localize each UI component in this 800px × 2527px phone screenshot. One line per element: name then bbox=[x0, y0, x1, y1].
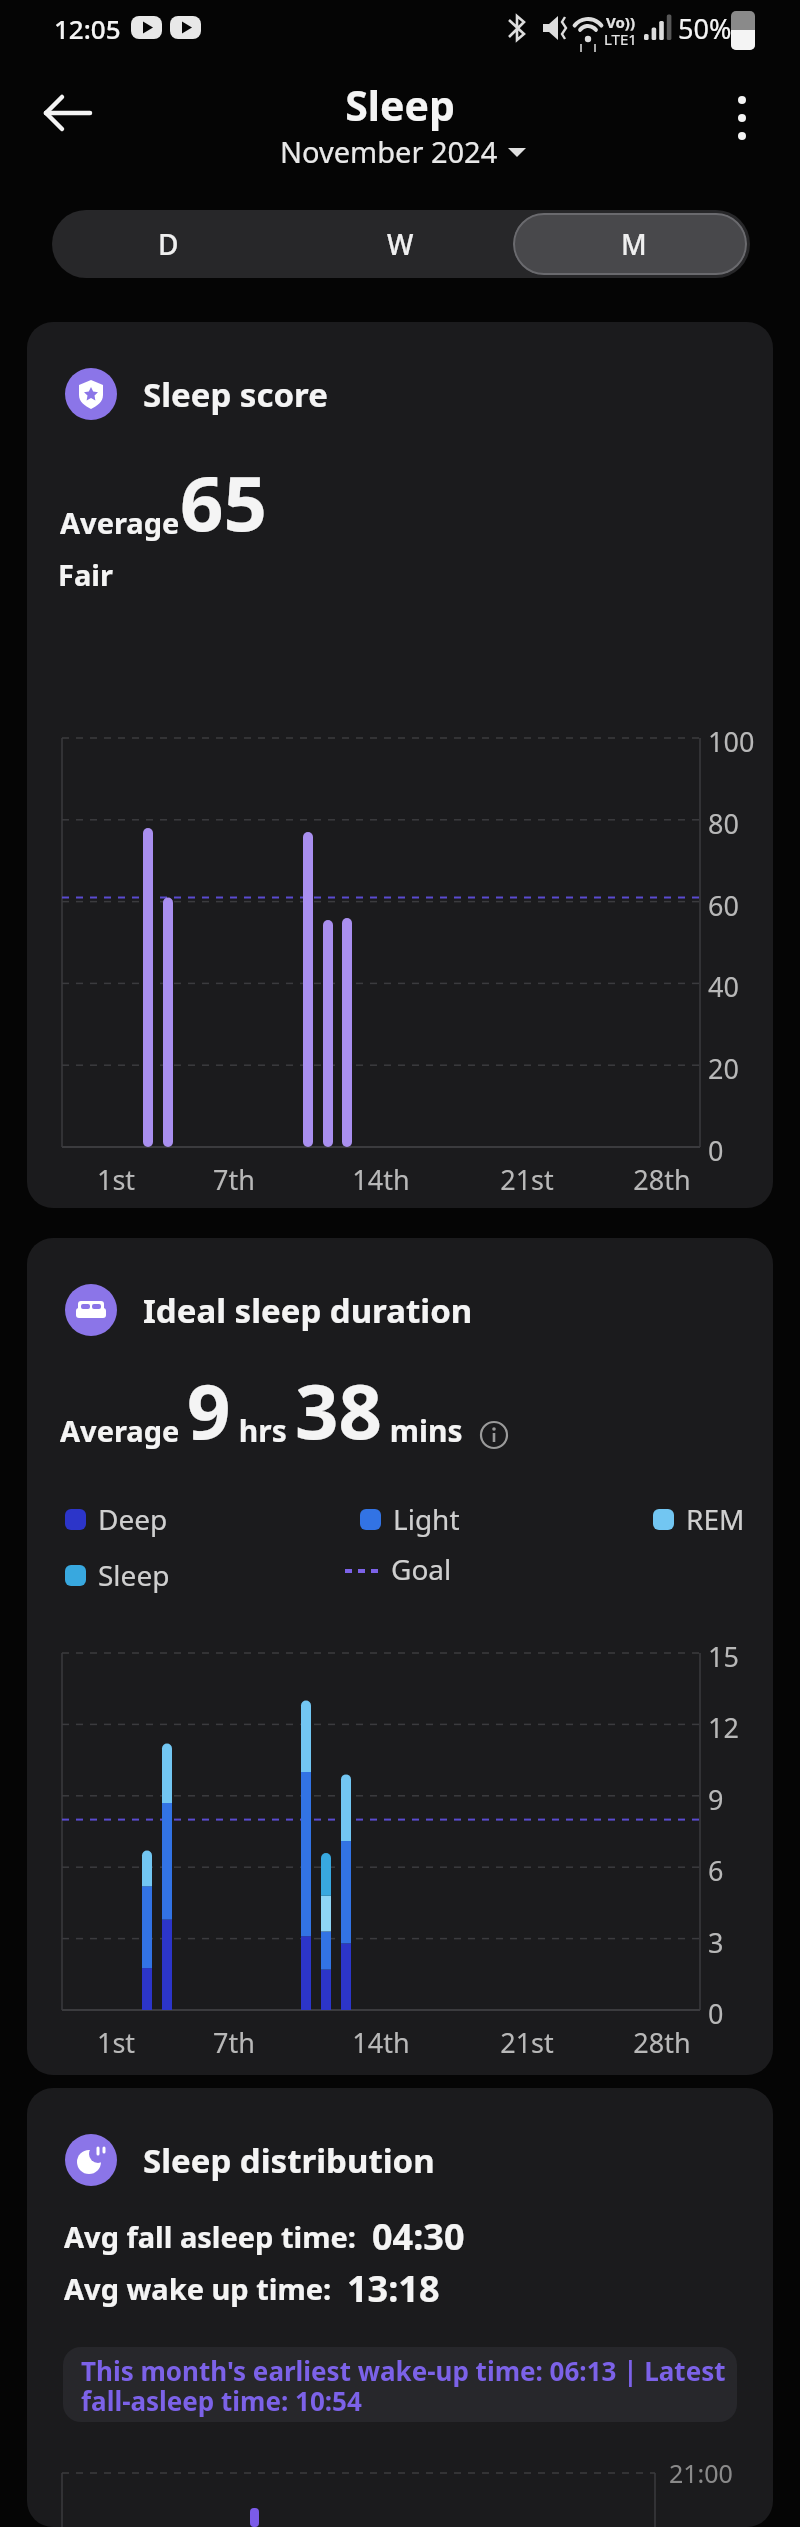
staticText: 1st bbox=[71, 2024, 161, 2061]
staticText: Avg fall asleep time: bbox=[64, 2217, 372, 2256]
button[interactable]: D bbox=[52, 210, 284, 278]
staticText: 12 bbox=[708, 1709, 768, 1746]
staticText: 80 bbox=[708, 805, 768, 842]
staticText: 15 bbox=[708, 1638, 768, 1675]
staticText: 14th bbox=[336, 1161, 426, 1198]
staticText: Average bbox=[60, 1411, 187, 1450]
staticText: Vo)) bbox=[606, 12, 635, 32]
staticText: 21st bbox=[482, 1161, 572, 1198]
staticText: 7th bbox=[189, 1161, 279, 1198]
staticText: 1st bbox=[71, 1161, 161, 1198]
staticText: 60 bbox=[708, 887, 768, 924]
button[interactable]: November 2024 bbox=[280, 132, 520, 171]
staticText: 12:05 bbox=[54, 11, 121, 46]
staticText: mins bbox=[382, 1410, 471, 1451]
staticText: 28th bbox=[617, 2024, 707, 2061]
staticText: 9 bbox=[708, 1781, 768, 1818]
staticText: 50% bbox=[678, 10, 732, 47]
staticText: REM bbox=[686, 1500, 745, 1538]
staticText: 65 bbox=[180, 450, 267, 554]
button[interactable] bbox=[712, 90, 768, 146]
staticText: Deep bbox=[98, 1500, 168, 1538]
staticText: Avg wake up time: bbox=[64, 2269, 347, 2308]
staticText: Average bbox=[60, 503, 180, 542]
staticText: 13:18 bbox=[347, 2264, 440, 2313]
staticText: LTE1 bbox=[604, 29, 637, 49]
staticText: Sleep distribution bbox=[143, 2138, 435, 2183]
staticText: 7th bbox=[189, 2024, 279, 2061]
staticText: 0 bbox=[708, 1995, 768, 2032]
staticText: 3 bbox=[708, 1924, 768, 1961]
staticText: 100 bbox=[708, 723, 768, 760]
staticText: Goal bbox=[391, 1550, 452, 1588]
staticText: W bbox=[387, 225, 414, 263]
staticText: Light bbox=[393, 1500, 460, 1538]
staticText: This month's earliest wake-up time: 06:1… bbox=[81, 2353, 726, 2419]
staticText: 38 bbox=[295, 1358, 382, 1462]
staticText: Sleep bbox=[98, 1556, 170, 1594]
staticText: 20 bbox=[708, 1050, 768, 1087]
staticText: Sleep bbox=[0, 77, 800, 133]
staticText: hrs bbox=[231, 1410, 295, 1451]
staticText: 14th bbox=[336, 2024, 426, 2061]
staticText: Fair bbox=[58, 555, 113, 594]
button[interactable]: M bbox=[517, 210, 750, 278]
staticText: Ideal sleep duration bbox=[143, 1288, 473, 1333]
button[interactable]: W bbox=[284, 210, 517, 278]
staticText: 21st bbox=[482, 2024, 572, 2061]
staticText: 6 bbox=[708, 1852, 768, 1889]
staticText: Sleep score bbox=[143, 372, 328, 417]
staticText: 04:30 bbox=[372, 2212, 465, 2261]
staticText: 9 bbox=[187, 1358, 231, 1462]
button[interactable] bbox=[34, 83, 100, 143]
staticText: 40 bbox=[708, 968, 768, 1005]
staticText: M bbox=[621, 225, 647, 263]
staticText: 21:00 bbox=[669, 2456, 733, 2490]
staticText: D bbox=[158, 225, 179, 263]
staticText: 28th bbox=[617, 1161, 707, 1198]
staticText: 0 bbox=[708, 1132, 768, 1169]
staticText: November 2024 bbox=[280, 132, 498, 171]
